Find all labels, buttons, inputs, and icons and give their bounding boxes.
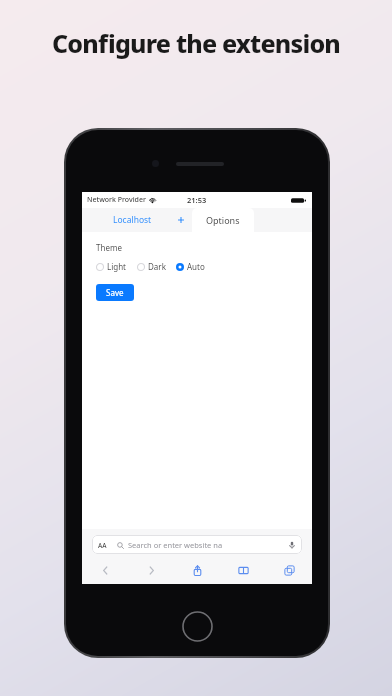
staticText: Save [106,287,124,298]
staticText: AA [98,541,107,550]
staticText: Search or enter website na [128,540,288,550]
staticText: 21:53 [187,195,207,205]
button[interactable]: Back [82,561,128,579]
button[interactable]: Share [174,561,220,579]
button[interactable]: Bookmarks [220,561,266,579]
button[interactable]: Light [96,261,127,272]
staticText: Light [107,261,127,272]
staticText: Network Provider [87,195,146,205]
button[interactable]: Options [192,208,254,232]
button[interactable]: Auto [176,261,205,272]
staticText: Options [206,214,240,226]
staticText: Localhost [113,214,152,226]
staticText: Auto [187,261,205,272]
button[interactable]: AA [92,535,302,554]
button[interactable]: New tab [172,208,190,232]
staticText: Configure the extension [52,26,341,60]
button[interactable]: Save [96,284,134,301]
button[interactable]: Localhost [92,208,172,232]
button[interactable]: Dark [137,261,166,272]
button[interactable]: Tabs [266,561,312,579]
button[interactable]: Forward [128,561,174,579]
staticText: Dark [148,261,166,272]
staticText: Theme [96,242,122,253]
